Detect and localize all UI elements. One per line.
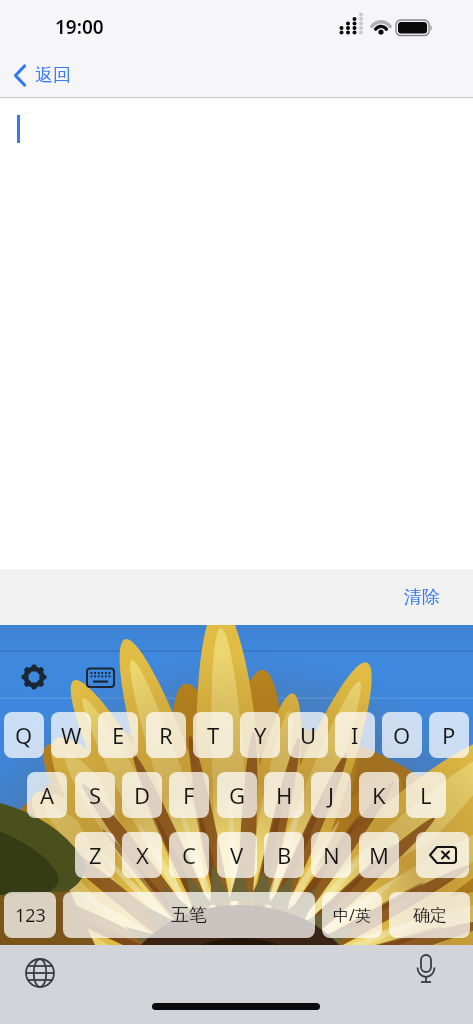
button[interactable]: Y [240,712,280,758]
button[interactable]: E [98,712,138,758]
staticText: P [442,720,456,750]
button[interactable]: 确定 [389,892,470,938]
staticText: O [393,720,411,750]
button[interactable]: N [311,832,351,878]
button[interactable]: S [75,772,115,818]
staticText: Q [15,720,33,750]
staticText: L [420,780,432,810]
staticText: F [183,780,195,810]
button[interactable]: G [217,772,257,818]
button[interactable]: B [264,832,304,878]
staticText: 清除 [404,586,440,609]
staticText: V [230,840,244,870]
button[interactable]: Q [4,712,44,758]
staticText: 返回 [35,64,71,87]
staticText: I [351,720,359,750]
button[interactable]: F [169,772,209,818]
button[interactable]: 中/英 [322,892,382,938]
staticText: 五笔 [171,904,207,927]
button[interactable] [416,832,469,878]
button[interactable]: C [169,832,209,878]
button[interactable]: X [122,832,162,878]
staticText: H [276,780,293,810]
button[interactable]: Z [75,832,115,878]
staticText: R [159,720,173,750]
button[interactable]: 五笔 [63,892,315,938]
button[interactable]: 返回 [4,58,94,94]
staticText: 19:00 [55,14,104,40]
staticText: N [323,840,340,870]
button[interactable]: A [27,772,67,818]
button[interactable]: 清除 [404,586,440,609]
button[interactable]: W [51,712,91,758]
staticText: W [61,720,82,750]
button[interactable]: O [382,712,422,758]
staticText: 确定 [413,905,447,926]
button[interactable] [18,661,50,693]
staticText: A [40,780,55,810]
staticText: M [369,840,389,870]
staticText: 中/英 [333,904,371,926]
button[interactable]: R [146,712,186,758]
staticText: U [300,720,317,750]
button[interactable]: I [335,712,375,758]
button[interactable]: T [193,712,233,758]
button[interactable]: J [311,772,351,818]
staticText: E [112,720,125,750]
button[interactable]: 123 [4,892,56,938]
button[interactable] [0,98,473,569]
button[interactable]: K [359,772,399,818]
staticText: X [136,840,149,870]
staticText: J [328,780,335,810]
staticText: D [134,780,151,810]
button[interactable]: D [122,772,162,818]
staticText: Z [89,840,102,870]
button[interactable]: H [264,772,304,818]
button[interactable]: V [217,832,257,878]
button[interactable] [22,955,58,991]
staticText: G [229,780,246,810]
staticText: 123 [15,903,46,928]
staticText: Y [254,720,267,750]
staticText: T [207,720,220,750]
staticText: K [372,780,386,810]
button[interactable]: P [429,712,469,758]
button[interactable] [408,953,444,989]
button[interactable]: U [288,712,328,758]
button[interactable] [84,661,118,693]
staticText: B [277,840,292,870]
button[interactable]: M [359,832,399,878]
staticText: C [182,840,196,870]
staticText: S [89,780,102,810]
button[interactable]: L [406,772,446,818]
